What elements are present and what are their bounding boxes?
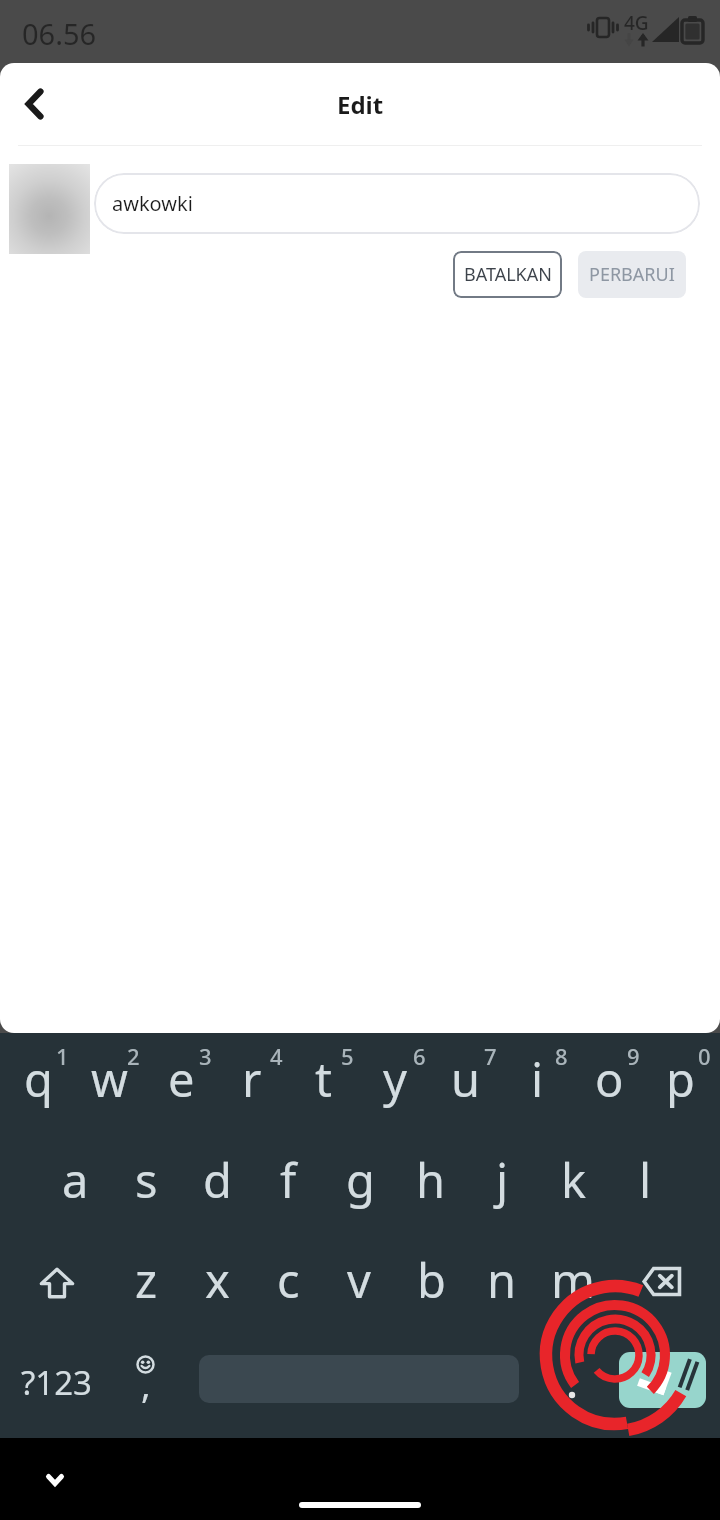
button[interactable]: u [430, 1034, 502, 1129]
staticText: a [62, 1148, 89, 1212]
staticText: b [417, 1248, 446, 1312]
button[interactable]: e [145, 1034, 217, 1129]
staticText: e [168, 1047, 195, 1111]
staticText: 4G [624, 10, 649, 36]
staticText: j [496, 1148, 509, 1212]
button[interactable]: Hide keyboard [23, 1448, 87, 1512]
button[interactable]: f [252, 1132, 324, 1227]
staticText: Edit [337, 88, 384, 121]
button[interactable]: BATALKAN [453, 251, 562, 298]
staticText: c [277, 1248, 300, 1312]
button[interactable]: x [181, 1232, 253, 1327]
button[interactable]: PERBARUI [578, 251, 686, 298]
staticText: 3 [199, 1041, 212, 1071]
staticText: PERBARUI [589, 262, 675, 287]
button[interactable]: s [110, 1132, 182, 1227]
button[interactable]: l [609, 1132, 681, 1227]
button[interactable]: y [359, 1034, 431, 1129]
button[interactable]: Backspace [612, 1232, 720, 1327]
button[interactable]: w [73, 1034, 145, 1129]
button[interactable]: o [573, 1034, 645, 1129]
button[interactable]: n [466, 1232, 538, 1327]
button[interactable]: Shift [0, 1232, 108, 1327]
staticText: l [639, 1148, 652, 1212]
staticText: ?123 [21, 1360, 92, 1405]
button[interactable]: awkowki [94, 173, 700, 234]
staticText: p [666, 1047, 695, 1111]
staticText: r [242, 1047, 262, 1111]
button[interactable]: ?123 [0, 1335, 112, 1430]
button[interactable]: c [252, 1232, 324, 1327]
button[interactable]: j [466, 1132, 538, 1227]
staticText: w [91, 1047, 128, 1111]
button[interactable]: Back [0, 70, 68, 138]
button[interactable]: m [537, 1232, 609, 1327]
staticText: 2 [127, 1041, 140, 1071]
staticText: s [135, 1148, 158, 1212]
staticText: m [551, 1248, 595, 1312]
staticText: t [315, 1047, 332, 1111]
staticText: n [487, 1248, 517, 1312]
button[interactable]: v [323, 1232, 395, 1327]
staticText: , [141, 1360, 151, 1409]
staticText: 4 [270, 1041, 283, 1071]
staticText: i [531, 1047, 544, 1111]
staticText: awkowki [112, 190, 193, 217]
button[interactable]: p [644, 1034, 716, 1129]
button[interactable]: q [2, 1034, 74, 1129]
staticText: x [205, 1248, 230, 1312]
button[interactable]: k [538, 1132, 610, 1227]
button[interactable]: g [324, 1132, 396, 1227]
button[interactable]: b [395, 1232, 467, 1327]
staticText: h [416, 1148, 446, 1212]
staticText: u [451, 1047, 481, 1111]
staticText: d [203, 1148, 232, 1212]
staticText: 06.56 [22, 14, 97, 53]
staticText: 0 [698, 1041, 711, 1071]
button[interactable]: z [110, 1232, 182, 1327]
button[interactable]: r [216, 1034, 288, 1129]
staticText: 5 [341, 1041, 354, 1071]
staticText: 7 [484, 1041, 497, 1071]
staticText: g [346, 1148, 375, 1212]
staticText: 8 [555, 1041, 568, 1071]
staticText: 9 [627, 1041, 640, 1071]
button[interactable]: d [181, 1132, 253, 1227]
staticText: 1 [56, 1041, 69, 1071]
staticText: 6 [413, 1041, 426, 1071]
staticText: v [347, 1248, 371, 1312]
button[interactable]: t [287, 1034, 359, 1129]
staticText: k [561, 1148, 587, 1212]
staticText: o [595, 1047, 624, 1111]
staticText: BATALKAN [464, 262, 552, 287]
button[interactable]: Emoji [112, 1335, 184, 1430]
button[interactable]: a [39, 1132, 111, 1227]
staticText: y [383, 1047, 407, 1111]
button[interactable]: i [501, 1034, 573, 1129]
staticText: f [280, 1148, 297, 1212]
staticText: z [135, 1248, 158, 1312]
staticText: q [24, 1047, 53, 1111]
button[interactable]: h [395, 1132, 467, 1227]
